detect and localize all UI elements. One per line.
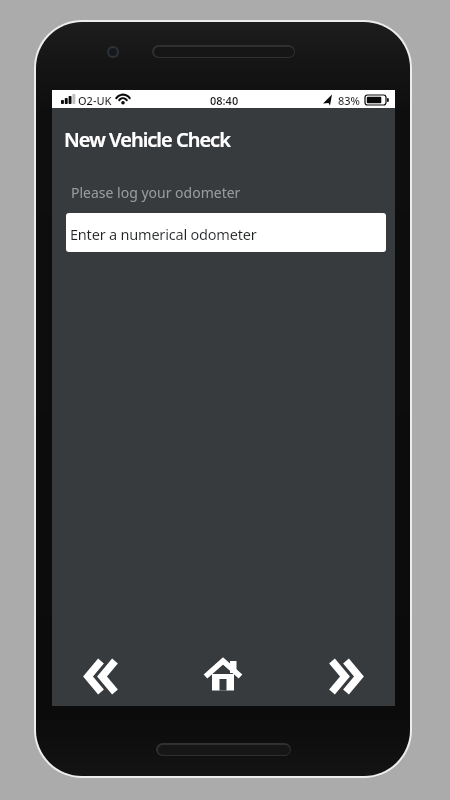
- button[interactable]: Enter a numerical odometer: [66, 213, 386, 252]
- staticText: O2-UK: [78, 93, 112, 108]
- button[interactable]: [86, 660, 116, 693]
- staticText: 08:40: [210, 93, 239, 108]
- staticText: New Vehicle Check: [64, 126, 230, 153]
- button[interactable]: [204, 659, 242, 691]
- staticText: Enter a numerical odometer: [70, 224, 257, 244]
- staticText: Please log your odometer: [71, 183, 241, 202]
- button[interactable]: [331, 660, 361, 693]
- staticText: 83%: [338, 93, 360, 108]
